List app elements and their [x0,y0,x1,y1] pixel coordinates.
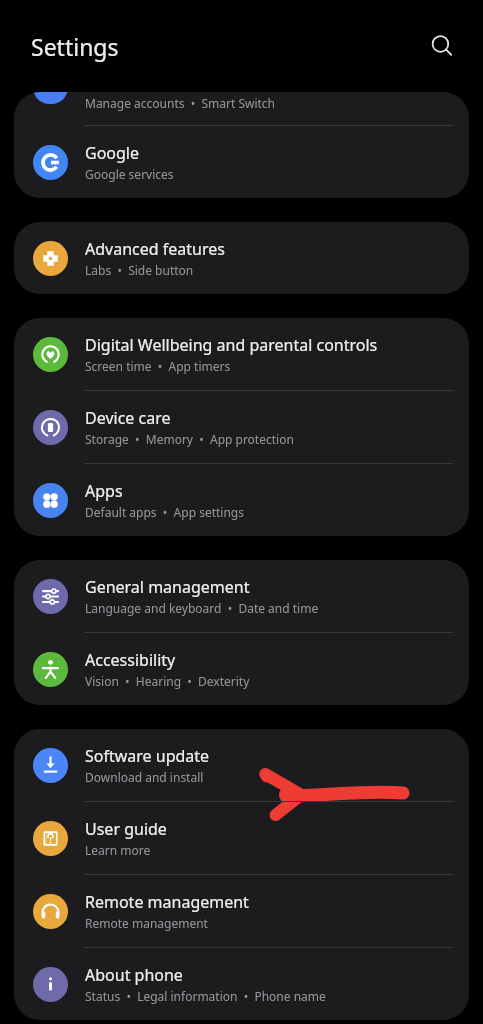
button[interactable]: Digital Wellbeing and parental controls [14,318,469,390]
button[interactable]: Search [420,24,464,68]
button[interactable]: Software update [14,729,469,801]
button[interactable]: Accessibility [14,633,469,705]
staticText: Software update [85,745,210,767]
staticText: Remote management [85,915,208,931]
button[interactable]: User guide [14,802,469,874]
staticText: Learn more [85,842,151,858]
button[interactable]: Google [14,126,469,198]
staticText: General management [85,576,250,598]
staticText: Storage • Memory • App protection [85,431,294,447]
staticText: Google services [85,166,174,182]
staticText: Download and install [85,769,204,785]
button[interactable]: General management [14,560,469,632]
staticText: Default apps • App settings [85,504,244,520]
staticText: Apps [85,480,123,502]
staticText: Status • Legal information • Phone name [85,988,326,1004]
staticText: Vision • Hearing • Dexterity [85,673,250,689]
button[interactable]: Advanced features [14,222,469,294]
staticText: Digital Wellbeing and parental controls [85,334,378,356]
button[interactable]: Manage accounts • Smart Switch [14,92,469,125]
staticText: About phone [85,964,183,986]
staticText: Settings [31,31,119,62]
button[interactable]: About phone [14,948,469,1020]
staticText: Remote management [85,891,249,913]
staticText: User guide [85,818,167,840]
staticText: Labs • Side button [85,262,194,278]
staticText: Device care [85,407,171,429]
staticText: Advanced features [85,238,225,260]
staticText: Screen time • App timers [85,358,231,374]
button[interactable]: Device care [14,391,469,463]
staticText: Manage accounts • Smart Switch [85,95,276,111]
staticText: Language and keyboard • Date and time [85,600,319,616]
button[interactable]: Apps [14,464,469,536]
button[interactable]: Remote management [14,875,469,947]
staticText: Accessibility [85,649,176,671]
staticText: Google [85,142,140,164]
